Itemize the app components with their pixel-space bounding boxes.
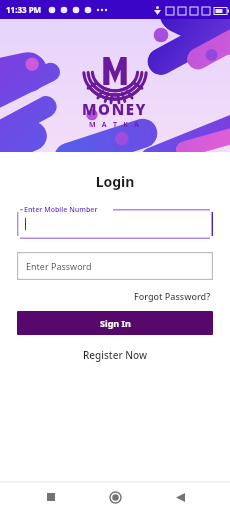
button[interactable]: Recent apps [37, 483, 65, 511]
staticText: Enter Mobile Number [24, 205, 98, 215]
staticText: Login [17, 172, 213, 191]
button[interactable]: Home [101, 483, 129, 511]
button[interactable]: Enter Mobile Number [17, 209, 213, 239]
staticText: Enter Password [26, 260, 92, 272]
staticText: Sign In [100, 317, 131, 329]
button[interactable]: Enter Password [17, 252, 213, 280]
button[interactable]: Sign In [17, 311, 213, 335]
button[interactable]: Register Now [81, 346, 149, 364]
staticText: M A T K A [89, 120, 142, 130]
button[interactable]: Back [166, 483, 194, 511]
staticText: 11:33 PM [6, 4, 42, 15]
staticText: MONEY [82, 99, 148, 119]
button[interactable]: Forgot Password? [132, 288, 213, 304]
